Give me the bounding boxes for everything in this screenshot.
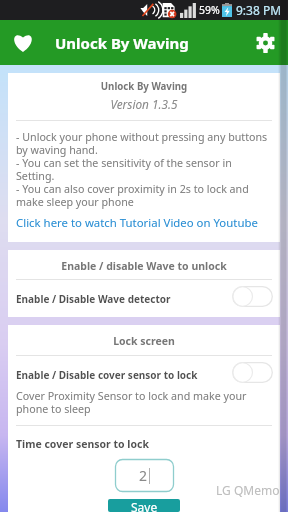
staticText: Version 1.3.5 (8, 96, 280, 112)
staticText: Save (131, 499, 158, 512)
staticText: 9:38 PM (236, 2, 282, 18)
staticText: Time cover sensor to lock (16, 437, 149, 451)
staticText: 59% (199, 3, 220, 17)
staticText: Enable / Disable cover sensor to lock (16, 368, 198, 382)
button[interactable]: Enable / Disable cover sensor to lock (8, 356, 280, 393)
staticText: Cover Proximity Sensor to lock and make … (16, 389, 247, 416)
button[interactable]: Settings (242, 20, 288, 65)
staticText: - Unlock your phone without pressing any… (16, 130, 268, 209)
button[interactable]: App icon (0, 20, 46, 65)
staticText: Enable / Disable Wave detector (16, 292, 171, 306)
staticText: 2 (139, 466, 148, 485)
button[interactable]: Enable / Disable Wave detector (8, 280, 280, 317)
staticText: Unlock By Waving (55, 33, 189, 53)
staticText: Enable / disable Wave to unlock (8, 259, 280, 273)
staticText: Lock screen (8, 334, 280, 348)
staticText: Click here to watch Tutorial Video on Yo… (16, 215, 258, 231)
staticText: LG QMemo (216, 482, 280, 498)
button[interactable]: Click here to watch Tutorial Video on Yo… (8, 211, 280, 242)
staticText: Unlock By Waving (8, 80, 280, 93)
button[interactable]: 2 (115, 459, 174, 492)
button[interactable]: Save (108, 499, 180, 512)
